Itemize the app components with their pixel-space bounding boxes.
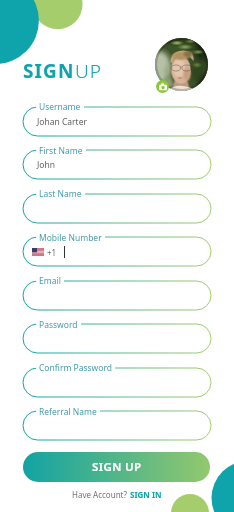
staticText: Have Account?	[72, 489, 130, 500]
staticText: SIGN IN	[130, 489, 162, 500]
staticText: Username	[39, 101, 81, 113]
staticText: UP	[75, 58, 103, 84]
button[interactable]	[23, 281, 211, 310]
button[interactable]: Johan Carter	[23, 107, 211, 136]
staticText: +1	[47, 247, 57, 258]
button[interactable]: +1	[23, 237, 211, 266]
staticText: Last Name	[39, 188, 82, 200]
button[interactable]	[23, 324, 211, 353]
button[interactable]: John	[23, 150, 211, 179]
button[interactable]: Change profile photo	[155, 38, 208, 91]
button[interactable]	[23, 194, 211, 223]
staticText: SIGN UP	[92, 459, 142, 475]
button[interactable]	[23, 368, 211, 397]
button[interactable]: SIGN IN	[130, 489, 162, 500]
staticText: Referral Name	[39, 406, 97, 418]
button[interactable]: SIGN UP	[23, 452, 210, 482]
staticText: John	[37, 159, 55, 171]
staticText: Password	[39, 319, 78, 331]
staticText: Johan Carter	[37, 116, 87, 128]
staticText: Confirm Password	[39, 362, 112, 374]
staticText: SIGN	[23, 58, 75, 84]
staticText: Email	[39, 275, 61, 287]
button[interactable]	[23, 411, 211, 440]
button[interactable]: Upload photo	[156, 80, 169, 93]
staticText: First Name	[39, 145, 83, 157]
staticText: Mobile Number	[39, 232, 102, 244]
